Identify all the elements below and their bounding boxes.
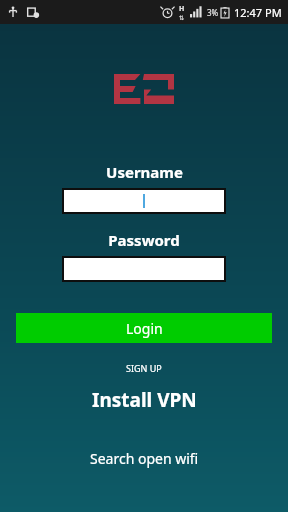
staticText: Search open wifi [90, 449, 199, 468]
staticText: 12:47 PM [234, 5, 282, 20]
button[interactable]: Login [16, 313, 272, 343]
staticText: Login [126, 319, 163, 338]
staticText: 3% [207, 7, 219, 18]
staticText: SIGN UP [126, 362, 162, 374]
button[interactable]: SIGN UP [112, 359, 176, 377]
button[interactable] [64, 190, 224, 212]
staticText: H [179, 4, 185, 14]
staticText: Install VPN [92, 387, 197, 413]
button[interactable]: Search open wifi [76, 446, 213, 471]
button[interactable]: Install VPN [78, 384, 211, 416]
staticText: Username [106, 162, 183, 182]
staticText: ⇅ [179, 14, 185, 21]
staticText: Password [108, 230, 180, 250]
